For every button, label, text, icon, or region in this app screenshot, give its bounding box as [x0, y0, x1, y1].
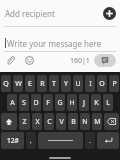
button[interactable]: H: [67, 94, 77, 111]
button[interactable]: Space: [38, 132, 83, 149]
button[interactable]: Add recipient: [103, 7, 116, 20]
staticText: .: [89, 137, 91, 145]
button[interactable]: F: [43, 94, 53, 111]
staticText: P: [112, 79, 117, 89]
button[interactable]: T: [49, 75, 59, 92]
button[interactable]: J: [79, 94, 89, 111]
button[interactable]: I: [85, 75, 95, 92]
button[interactable]: G: [55, 94, 65, 111]
staticText: A: [10, 98, 15, 108]
staticText: I: [89, 79, 92, 89]
staticText: F: [46, 98, 50, 108]
button[interactable]: P: [109, 75, 119, 92]
staticText: 160|1: [70, 56, 90, 66]
staticText: U: [75, 79, 81, 89]
staticText: H: [69, 98, 75, 108]
button[interactable]: W: [13, 75, 23, 92]
button[interactable]: R: [37, 75, 47, 92]
button[interactable]: Shift: [1, 113, 17, 130]
staticText: S: [22, 98, 26, 108]
button[interactable]: N: [80, 113, 90, 130]
button[interactable]: 12#: [1, 132, 24, 149]
staticText: B: [71, 117, 76, 127]
button[interactable]: Attach file: [4, 54, 17, 67]
button[interactable]: O: [97, 75, 107, 92]
staticText: R: [40, 79, 45, 89]
staticText: Add recipient: [5, 8, 103, 19]
staticText: N: [82, 117, 88, 127]
button[interactable]: C: [44, 113, 54, 130]
button[interactable]: Add recipient: [0, 0, 120, 26]
button[interactable]: V: [56, 113, 66, 130]
staticText: ,: [30, 137, 32, 145]
staticText: D: [33, 98, 39, 108]
staticText: Z: [22, 117, 27, 127]
button[interactable]: ,: [26, 132, 36, 149]
button[interactable]: Z: [19, 113, 30, 130]
button[interactable]: E: [25, 75, 35, 92]
button[interactable]: Write your message here: [0, 35, 120, 51]
staticText: E: [28, 79, 32, 89]
button[interactable]: Backspace: [104, 113, 119, 130]
staticText: 12#: [7, 136, 19, 145]
button[interactable]: S: [19, 94, 29, 111]
staticText: C: [47, 117, 52, 127]
button[interactable]: L: [103, 94, 113, 111]
staticText: G: [57, 98, 63, 108]
staticText: L: [106, 98, 110, 108]
staticText: K: [94, 98, 99, 108]
button[interactable]: Y: [61, 75, 71, 92]
button[interactable]: M: [92, 113, 102, 130]
button[interactable]: Send message: [94, 54, 116, 67]
staticText: J: [83, 98, 85, 108]
button[interactable]: D: [31, 94, 41, 111]
staticText: T: [52, 79, 56, 89]
staticText: W: [15, 79, 22, 89]
staticText: X: [35, 117, 40, 127]
button[interactable]: Insert emoji: [23, 54, 36, 67]
button[interactable]: B: [68, 113, 78, 130]
button[interactable]: Enter: [97, 132, 119, 149]
button[interactable]: U: [73, 75, 83, 92]
button[interactable]: .: [85, 132, 95, 149]
button[interactable]: K: [91, 94, 101, 111]
staticText: Write your message here: [7, 38, 102, 49]
button[interactable]: X: [32, 113, 42, 130]
staticText: Y: [64, 79, 68, 89]
staticText: Q: [3, 79, 9, 89]
staticText: O: [99, 79, 105, 89]
button[interactable]: A: [7, 94, 17, 111]
staticText: V: [59, 117, 64, 127]
button[interactable]: Q: [1, 75, 11, 92]
staticText: M: [94, 117, 101, 127]
